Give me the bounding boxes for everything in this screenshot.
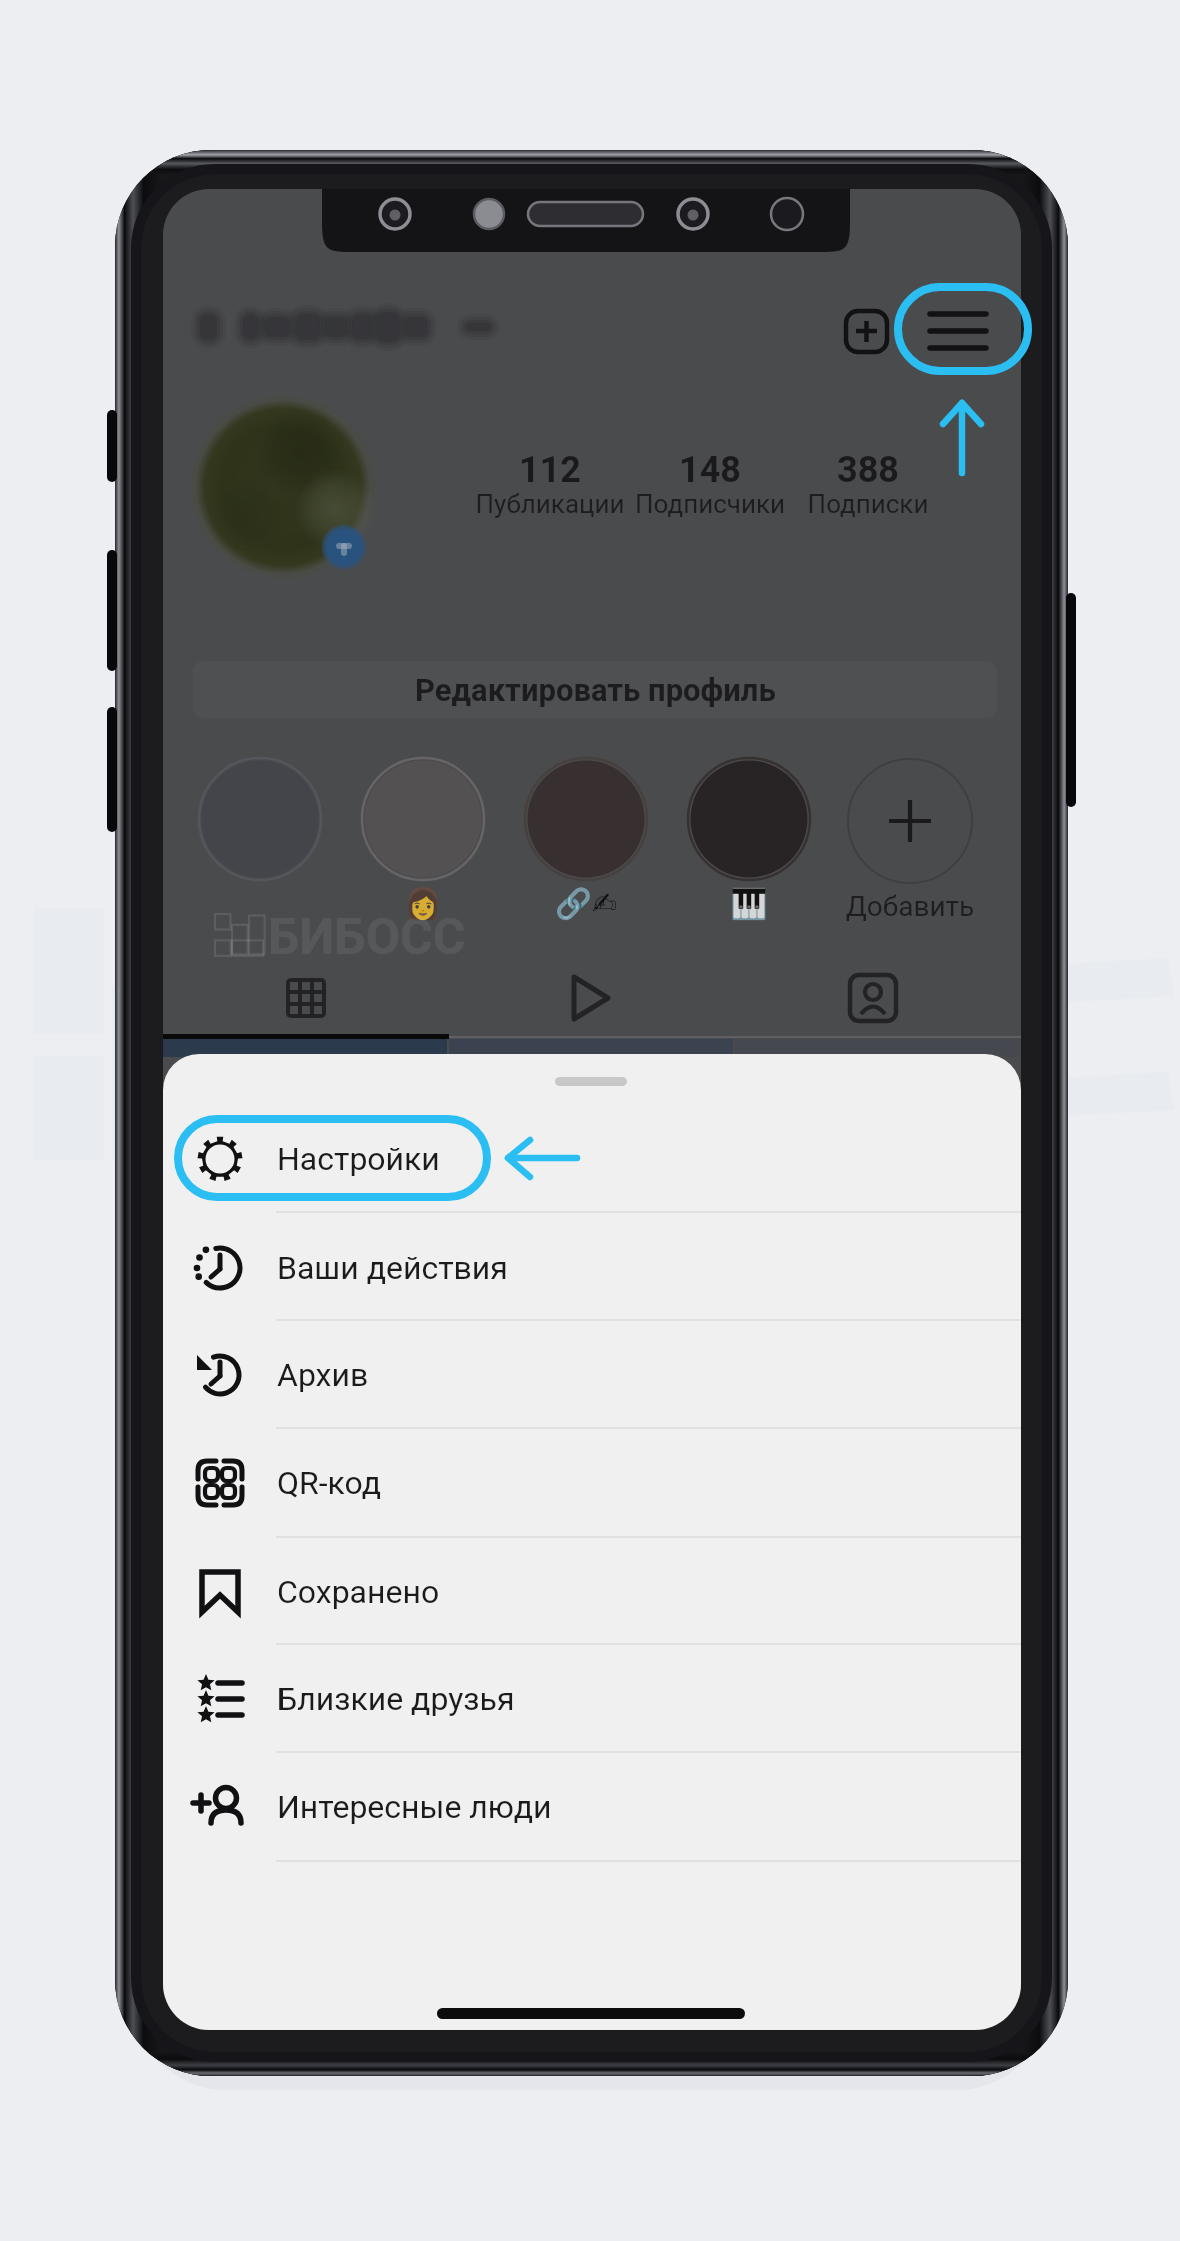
staticText: Подписчики [600,489,820,519]
button[interactable]: Видео [449,962,735,1036]
staticText: Редактировать профиль [415,672,776,708]
button[interactable]: Близкие друзья [163,1645,1021,1753]
button[interactable]: Настройки [163,1105,1021,1213]
button[interactable]: Актуальное [524,757,648,881]
button[interactable]: Интересные люди [163,1753,1021,1861]
button[interactable]: Редактировать профиль [193,661,997,718]
staticText: Архив [277,1356,369,1394]
staticText: 112 [460,449,640,491]
button[interactable]: Актуальное [361,757,485,881]
button[interactable]: QR-код [163,1429,1021,1537]
staticText: Настройки [277,1140,440,1178]
staticText: Интересные люди [277,1788,552,1826]
staticText: QR-код [277,1464,381,1502]
staticText: Публикации [440,489,660,519]
button[interactable]: Актуальное [687,757,811,881]
staticText: 148 [620,449,800,491]
button[interactable]: Архив [163,1321,1021,1429]
staticText: Ваши действия [277,1249,508,1287]
button[interactable]: Публикации сеткой [163,962,449,1036]
staticText: 🎹 [679,886,819,921]
staticText: 👩 [353,886,493,921]
staticText: Подписки [758,489,978,519]
button[interactable]: Ваши действия [163,1214,1021,1322]
staticText: БИБОСС [268,908,466,967]
button[interactable]: Меню [912,298,1004,364]
button[interactable]: Сохранено [163,1538,1021,1646]
staticText: Добавить [800,890,1020,923]
staticText: 388 [778,449,958,491]
staticText: 🔗✍ [516,886,656,921]
button[interactable]: Добавить [847,758,973,884]
button[interactable]: Актуальное [198,757,322,881]
button[interactable]: Отметки [735,962,1021,1036]
button[interactable]: Новая публикация [838,303,896,361]
staticText: Сохранено [277,1573,440,1611]
staticText: Близкие друзья [277,1680,515,1718]
